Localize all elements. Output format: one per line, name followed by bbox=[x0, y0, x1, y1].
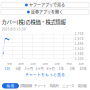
staticText: 2,670 bbox=[75, 37, 84, 41]
button[interactable]: ニュース bbox=[61, 83, 75, 88]
staticText: 15:00 bbox=[78, 62, 83, 66]
staticText: 2,700 bbox=[75, 32, 84, 36]
button[interactable]: 6ヶ月 bbox=[45, 66, 56, 71]
staticText: 時系列 bbox=[49, 83, 58, 88]
button[interactable]: 3ヶ月 bbox=[34, 66, 45, 71]
button[interactable]: 1日 bbox=[1, 66, 12, 71]
staticText: 株価 bbox=[6, 83, 14, 88]
button[interactable]: チャートをもっと見る bbox=[0, 72, 90, 77]
button[interactable]: 1年 bbox=[56, 66, 67, 71]
button[interactable]: 時系列 bbox=[47, 83, 61, 88]
button[interactable]: 1ヶ月 bbox=[23, 66, 34, 71]
staticText: 6ヶ月 bbox=[46, 66, 54, 71]
staticText: 2,550 bbox=[75, 57, 84, 61]
staticText: 1週 bbox=[15, 66, 20, 71]
staticText: 1日 bbox=[4, 66, 9, 71]
button[interactable]: 株価 bbox=[2, 83, 19, 88]
staticText: 2,610 bbox=[75, 47, 84, 51]
staticText: カバー(株)の株価・株式情報 bbox=[1, 18, 65, 26]
staticText: 1ヶ月 bbox=[25, 66, 33, 71]
staticText: 14:00 bbox=[66, 62, 71, 66]
staticText: 13:00 bbox=[54, 62, 59, 66]
staticText: 11:00 bbox=[30, 62, 35, 66]
staticText: ニュース bbox=[62, 83, 74, 88]
staticText: チャート bbox=[34, 83, 46, 88]
staticText: 10年 bbox=[80, 66, 87, 71]
button[interactable]: 2年 bbox=[67, 66, 78, 71]
button[interactable]: 証券アプリを開く bbox=[1, 9, 89, 15]
button[interactable]: チャート bbox=[33, 83, 47, 88]
button[interactable]: 1週 bbox=[12, 66, 23, 71]
staticText: 10:00 bbox=[18, 62, 23, 66]
staticText: 2,640 bbox=[75, 42, 84, 46]
staticText: 9:00 bbox=[7, 62, 11, 66]
staticText: 3ヶ月 bbox=[36, 66, 44, 71]
staticText: 掲示板 bbox=[77, 83, 86, 88]
button[interactable]: 10年 bbox=[78, 66, 88, 71]
staticText: 証券アプリを開く bbox=[31, 9, 63, 15]
staticText: 2,580 bbox=[75, 52, 84, 56]
staticText: チャートをもっと見る bbox=[25, 72, 65, 77]
staticText: 2年 bbox=[70, 66, 75, 71]
button[interactable]: ヤフーアプリで見る bbox=[1, 2, 89, 8]
button[interactable]: 掲示板 bbox=[75, 83, 89, 88]
staticText: 2025/9/5 15:30 bbox=[2, 27, 26, 31]
staticText: ヤフーアプリで見る bbox=[29, 2, 65, 8]
staticText: 12:00 bbox=[42, 62, 47, 66]
staticText: 詳細情報 bbox=[20, 83, 32, 88]
button[interactable]: 詳細情報 bbox=[19, 83, 33, 88]
staticText: 1年 bbox=[59, 66, 64, 71]
